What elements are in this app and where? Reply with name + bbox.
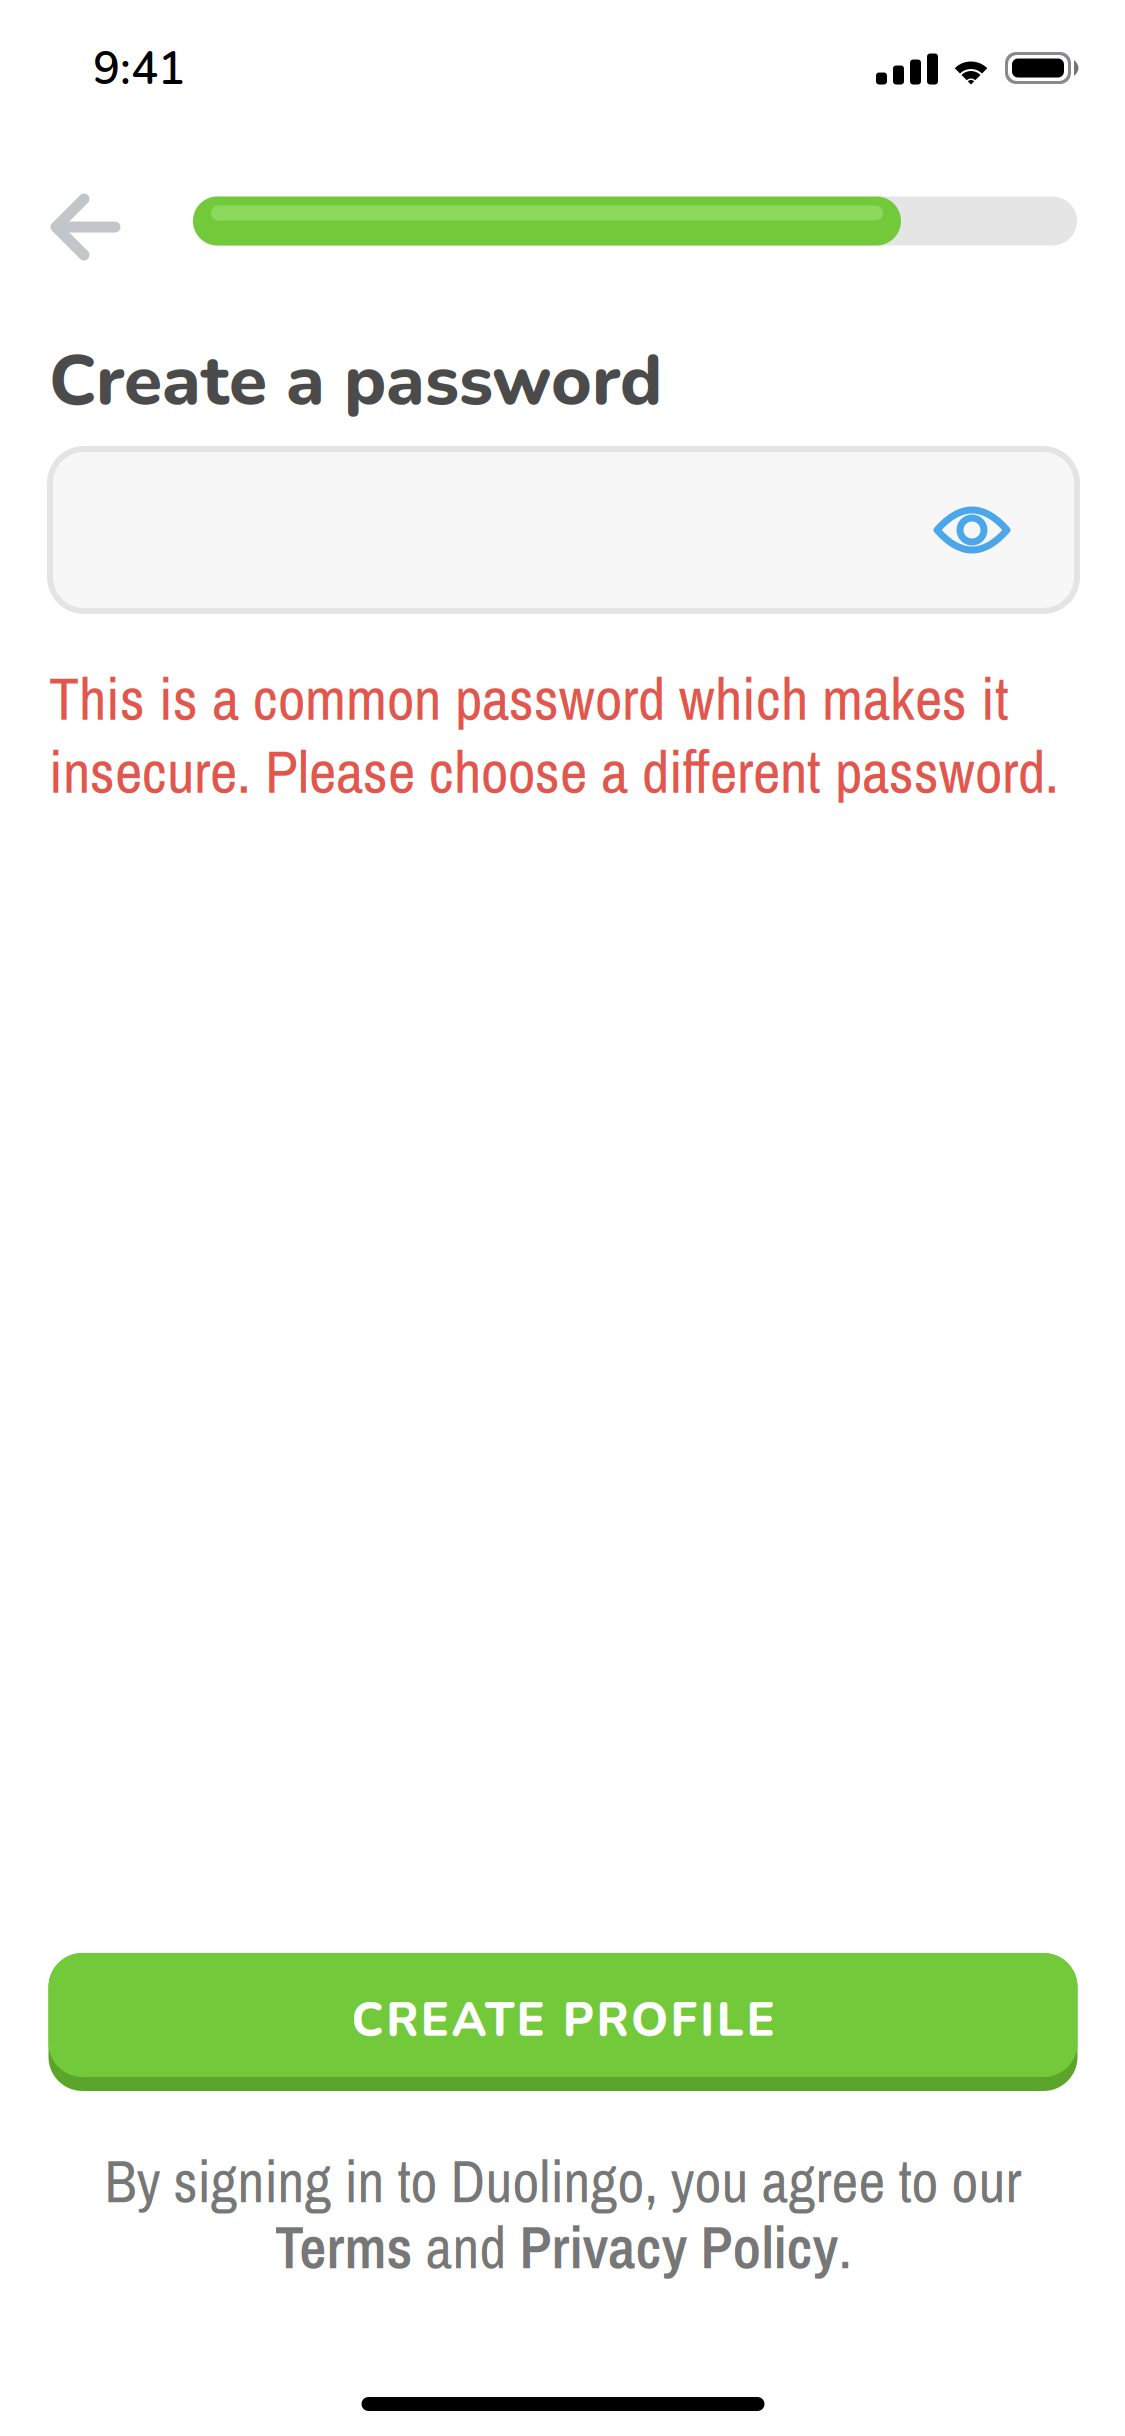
- staticText: Privacy Policy: [519, 2207, 838, 2286]
- staticText: By signing in to Duolingo, you agree to …: [104, 2141, 1021, 2220]
- staticText: and: [412, 2207, 519, 2286]
- staticText: Create a password: [49, 334, 662, 428]
- button[interactable]: CREATE PROFILE: [48, 1953, 1077, 2091]
- staticText: This is a common password which makes it: [49, 658, 1009, 738]
- staticText: insecure. Please choose a different pass…: [49, 731, 1059, 811]
- button[interactable]: Back: [26, 167, 146, 287]
- button[interactable]: Privacy Policy: [519, 2207, 838, 2286]
- staticText: Terms: [274, 2207, 412, 2286]
- staticText: 9:41: [93, 38, 185, 100]
- staticText: .: [838, 2207, 851, 2286]
- staticText: CREATE PROFILE: [352, 1989, 774, 2052]
- button[interactable]: Password: [50, 449, 1077, 611]
- button[interactable]: Terms: [274, 2207, 412, 2286]
